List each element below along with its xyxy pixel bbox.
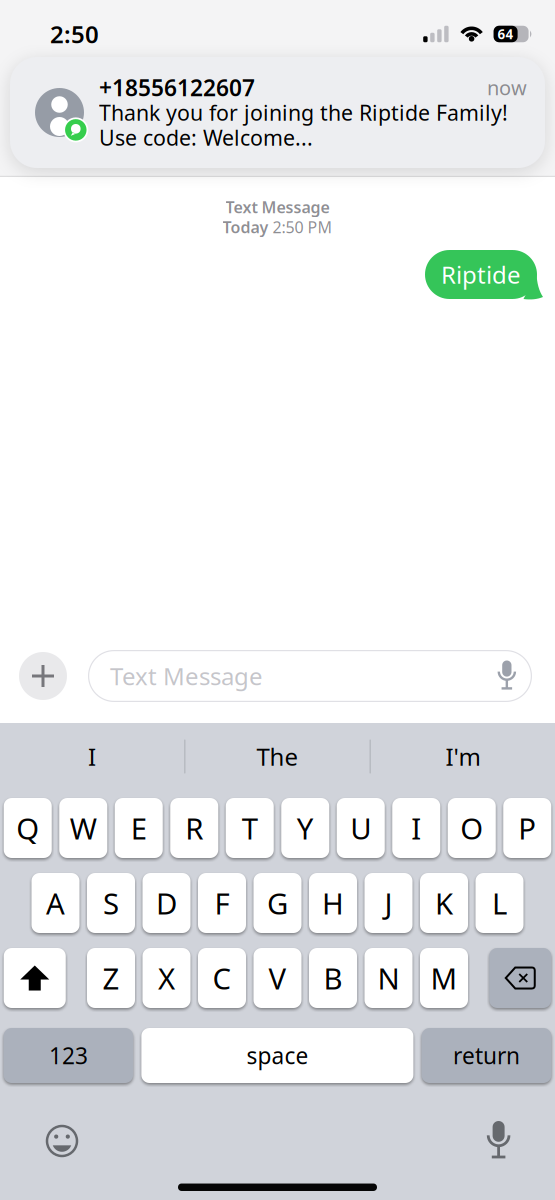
staticText: B (323, 958, 342, 997)
button[interactable]: X (142, 948, 190, 1008)
staticText: return (453, 1040, 520, 1070)
button[interactable]: S (87, 873, 135, 933)
button[interactable]: L (475, 873, 523, 933)
staticText: Q (16, 808, 39, 847)
button[interactable]: Emoji (0, 1124, 79, 1158)
button[interactable]: K (420, 873, 468, 933)
button[interactable]: Dictate (484, 1121, 555, 1161)
staticText: I (411, 808, 421, 847)
staticText: T (242, 808, 258, 847)
button[interactable]: C (198, 948, 246, 1008)
button[interactable]: Y (281, 798, 329, 858)
button[interactable]: R (170, 798, 218, 858)
staticText: Use code: Welcome... (99, 123, 313, 152)
staticText: O (460, 808, 483, 847)
button[interactable]: E (115, 798, 163, 858)
staticText: M (430, 958, 457, 997)
button[interactable]: Delete (489, 948, 551, 1008)
staticText: Y (297, 808, 314, 847)
button[interactable]: Z (87, 948, 135, 1008)
button[interactable]: J (364, 873, 412, 933)
button[interactable]: P (503, 798, 551, 858)
button[interactable]: F (198, 873, 246, 933)
button[interactable]: U (337, 798, 385, 858)
staticText: J (384, 883, 392, 922)
button[interactable]: I (392, 798, 440, 858)
staticText: R (185, 808, 203, 847)
button[interactable]: 123 (4, 1028, 133, 1083)
staticText: Text Message (110, 660, 263, 692)
staticText: P (518, 808, 536, 847)
button[interactable]: Q (4, 798, 52, 858)
staticText: U (350, 808, 371, 847)
button[interactable]: A (31, 873, 79, 933)
staticText: Thank you for joining the Riptide Family… (99, 98, 508, 127)
button[interactable]: G (253, 873, 301, 933)
button[interactable]: V (253, 948, 301, 1008)
staticText: Z (102, 958, 119, 997)
button[interactable]: I (0, 723, 184, 790)
button[interactable]: H (309, 873, 357, 933)
staticText: N (377, 958, 399, 997)
staticText: The (256, 741, 298, 772)
button[interactable]: Text Message field (88, 650, 532, 702)
staticText: I'm (445, 741, 480, 772)
button[interactable]: Dictate (496, 660, 532, 691)
staticText: V (268, 958, 286, 997)
button[interactable]: I'm (371, 723, 555, 790)
staticText: F (214, 883, 229, 922)
button[interactable]: Shift (4, 948, 66, 1008)
staticText: 2:50 (50, 18, 99, 50)
staticText: G (267, 883, 288, 922)
button[interactable]: M (420, 948, 468, 1008)
button[interactable]: return (422, 1028, 551, 1083)
button[interactable]: Add attachment (19, 652, 67, 700)
button[interactable]: O (448, 798, 496, 858)
staticText: space (246, 1040, 308, 1070)
button[interactable]: The (185, 723, 369, 790)
staticText: C (212, 958, 231, 997)
staticText: W (70, 808, 97, 847)
staticText: 123 (49, 1040, 88, 1070)
staticText: now (487, 74, 527, 101)
staticText: Riptide (441, 259, 521, 290)
staticText: K (435, 883, 453, 922)
staticText: +18556122607 (99, 72, 255, 102)
button[interactable]: N (364, 948, 412, 1008)
staticText: L (492, 883, 507, 922)
button[interactable]: B (309, 948, 357, 1008)
staticText: S (103, 883, 119, 922)
staticText: I (88, 741, 96, 772)
staticText: H (322, 883, 344, 922)
staticText: E (131, 808, 147, 847)
button[interactable]: space (141, 1028, 413, 1083)
staticText: Text Message (225, 196, 329, 218)
button[interactable]: T (226, 798, 274, 858)
staticText: 64 (498, 25, 514, 43)
staticText: D (156, 883, 177, 922)
button[interactable]: W (59, 798, 107, 858)
staticText: A (46, 883, 65, 922)
staticText: Today 2:50 PM (222, 216, 332, 238)
button[interactable]: +18556122607 (10, 57, 545, 168)
button[interactable]: D (142, 873, 190, 933)
staticText: X (158, 958, 175, 997)
